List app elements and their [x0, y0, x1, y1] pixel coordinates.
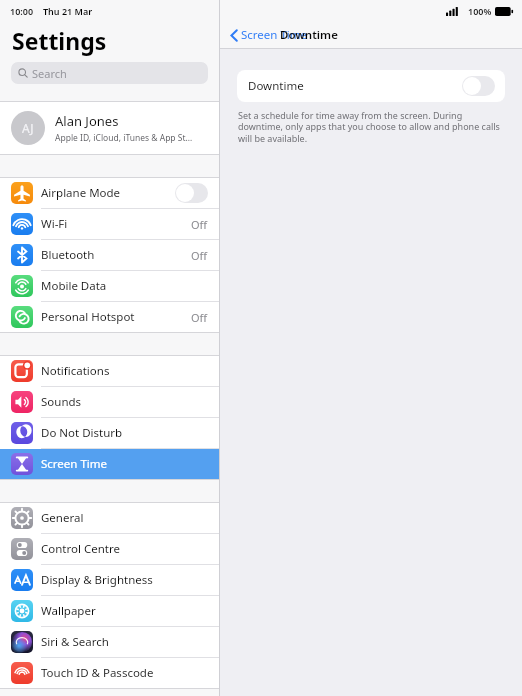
staticText: Off — [191, 217, 208, 232]
staticText: Mobile Data — [41, 278, 107, 294]
button[interactable]: Touch ID & Passcode — [0, 658, 219, 688]
staticText: Off — [191, 248, 208, 263]
staticText: Screen Time — [241, 27, 308, 43]
staticText: Screen Time — [41, 456, 108, 472]
button[interactable]: Wallpaper — [0, 596, 219, 626]
staticText: Personal Hotspot — [41, 309, 135, 325]
staticText: Control Centre — [41, 541, 120, 557]
button[interactable]: Control Centre — [0, 534, 219, 564]
staticText: Touch ID & Passcode — [41, 665, 154, 681]
staticText: Notifications — [41, 363, 110, 379]
staticText: Siri & Search — [41, 634, 109, 650]
button[interactable]: Downtime — [237, 70, 505, 102]
button[interactable]: Airplane Mode toggle — [175, 183, 208, 203]
button[interactable]: Sounds — [0, 387, 219, 417]
staticText: Sounds — [41, 394, 82, 410]
staticText: Wallpaper — [41, 603, 96, 619]
button[interactable]: Wi-Fi — [0, 209, 219, 239]
staticText: Apple ID, iCloud, iTunes & App St… — [55, 132, 193, 144]
button[interactable]: Display & Brightness — [0, 565, 219, 595]
staticText: Settings — [12, 25, 107, 56]
staticText: Display & Brightness — [41, 572, 153, 588]
staticText: Downtime — [280, 27, 338, 43]
button[interactable]: General — [0, 503, 219, 533]
staticText: General — [41, 510, 84, 526]
button[interactable]: Downtime toggle — [462, 76, 495, 96]
button[interactable]: Screen Time — [0, 449, 219, 479]
button[interactable]: Airplane Mode — [0, 178, 219, 208]
button[interactable]: AJ — [0, 102, 219, 154]
staticText: Set a schedule for time away from the sc… — [238, 109, 504, 145]
staticText: Wi-Fi — [41, 216, 68, 232]
button[interactable]: Notifications — [0, 356, 219, 386]
staticText: Off — [191, 310, 208, 325]
staticText: Downtime — [248, 78, 304, 94]
button[interactable]: Siri & Search — [0, 627, 219, 657]
staticText: AJ — [22, 120, 34, 136]
staticText: Airplane Mode — [41, 185, 121, 201]
staticText: 100% — [468, 5, 492, 17]
button[interactable]: Do Not Disturb — [0, 418, 219, 448]
button[interactable]: Mobile Data — [0, 271, 219, 301]
staticText: Thu 21 Mar — [43, 5, 93, 17]
button[interactable]: Screen Time — [230, 27, 308, 43]
staticText: Search — [32, 66, 67, 81]
staticText: Bluetooth — [41, 247, 95, 263]
button[interactable]: Personal Hotspot — [0, 302, 219, 332]
button[interactable]: Bluetooth — [0, 240, 219, 270]
staticText: Do Not Disturb — [41, 425, 123, 441]
staticText: Alan Jones — [55, 112, 119, 130]
staticText: 10:00 — [10, 5, 34, 17]
button[interactable]: Search — [11, 62, 208, 84]
